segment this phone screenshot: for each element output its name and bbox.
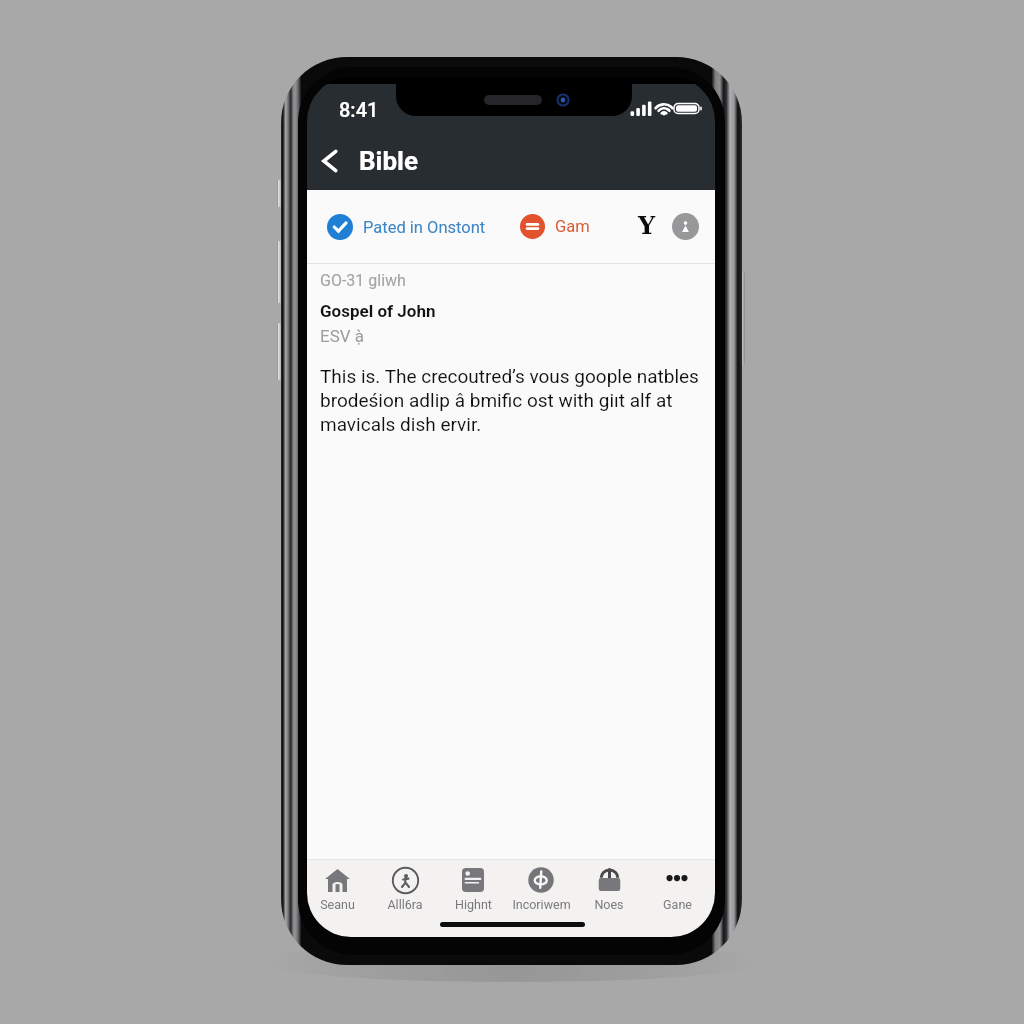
- button[interactable]: Gam: [518, 214, 590, 239]
- staticText: Gospel of John: [320, 301, 436, 321]
- staticText: GO-31 gliwh: [320, 271, 406, 290]
- staticText: Gane: [663, 897, 692, 912]
- button[interactable]: Gane: [643, 860, 711, 912]
- button[interactable]: Pated in Onstont: [325, 214, 486, 240]
- button[interactable]: Seanu: [307, 860, 371, 912]
- staticText: This is. The crecoutred’s vous goople na…: [320, 365, 699, 436]
- button[interactable]: Noes: [575, 860, 643, 912]
- staticText: Alll6ra: [387, 897, 423, 912]
- staticText: Y: [638, 211, 656, 239]
- staticText: Highnt: [455, 897, 492, 912]
- staticText: Seanu: [320, 897, 355, 912]
- button[interactable]: Profile: [672, 213, 699, 240]
- staticText: 8:41: [339, 98, 379, 121]
- staticText: Bible: [359, 146, 419, 176]
- button[interactable]: Yahoo: [631, 209, 663, 241]
- staticText: Noes: [594, 897, 624, 912]
- button[interactable]: Alll6ra: [371, 860, 439, 912]
- staticText: Gam: [555, 217, 590, 236]
- staticText: ESV ạ̀: [320, 326, 365, 346]
- button[interactable]: Back: [310, 142, 348, 180]
- button[interactable]: Highnt: [439, 860, 507, 912]
- button[interactable]: GO-31 gliwh: [307, 264, 715, 436]
- button[interactable]: Incoriwem: [507, 860, 575, 912]
- staticText: Incoriwem: [512, 897, 571, 912]
- staticText: Pated in Onstont: [363, 218, 486, 237]
